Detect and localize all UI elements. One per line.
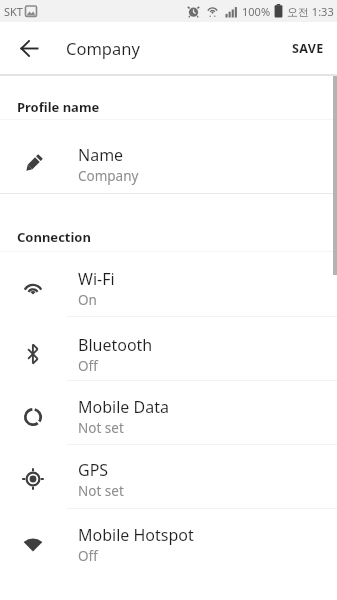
staticText: SKT bbox=[4, 4, 23, 19]
staticText: Not set bbox=[78, 419, 124, 437]
button[interactable]: GPS bbox=[0, 445, 337, 508]
staticText: Profile name bbox=[17, 98, 100, 116]
button[interactable]: Mobile Hotspot bbox=[0, 509, 337, 572]
staticText: Off bbox=[78, 547, 98, 565]
button[interactable]: Wi-Fi bbox=[0, 252, 337, 316]
staticText: Company bbox=[78, 167, 139, 185]
button[interactable]: Name bbox=[0, 120, 337, 193]
staticText: Wi-Fi bbox=[78, 268, 115, 290]
staticText: Mobile Hotspot bbox=[78, 524, 194, 546]
staticText: GPS bbox=[78, 459, 109, 481]
button[interactable]: Bluetooth bbox=[0, 317, 337, 380]
staticText: Company bbox=[66, 37, 140, 59]
staticText: Off bbox=[78, 357, 98, 375]
staticText: Name bbox=[78, 144, 124, 166]
button[interactable]: Mobile Data bbox=[0, 381, 337, 444]
staticText: On bbox=[78, 291, 97, 309]
button[interactable] bbox=[0, 22, 58, 74]
staticText: 오전 1:33 bbox=[287, 4, 334, 19]
staticText: Mobile Data bbox=[78, 396, 169, 418]
staticText: Bluetooth bbox=[78, 334, 153, 356]
button[interactable]: SAVE bbox=[292, 22, 337, 74]
staticText: 100% bbox=[242, 4, 271, 19]
staticText: Connection bbox=[17, 228, 91, 246]
staticText: Not set bbox=[78, 482, 124, 500]
staticText: SAVE bbox=[292, 40, 324, 57]
